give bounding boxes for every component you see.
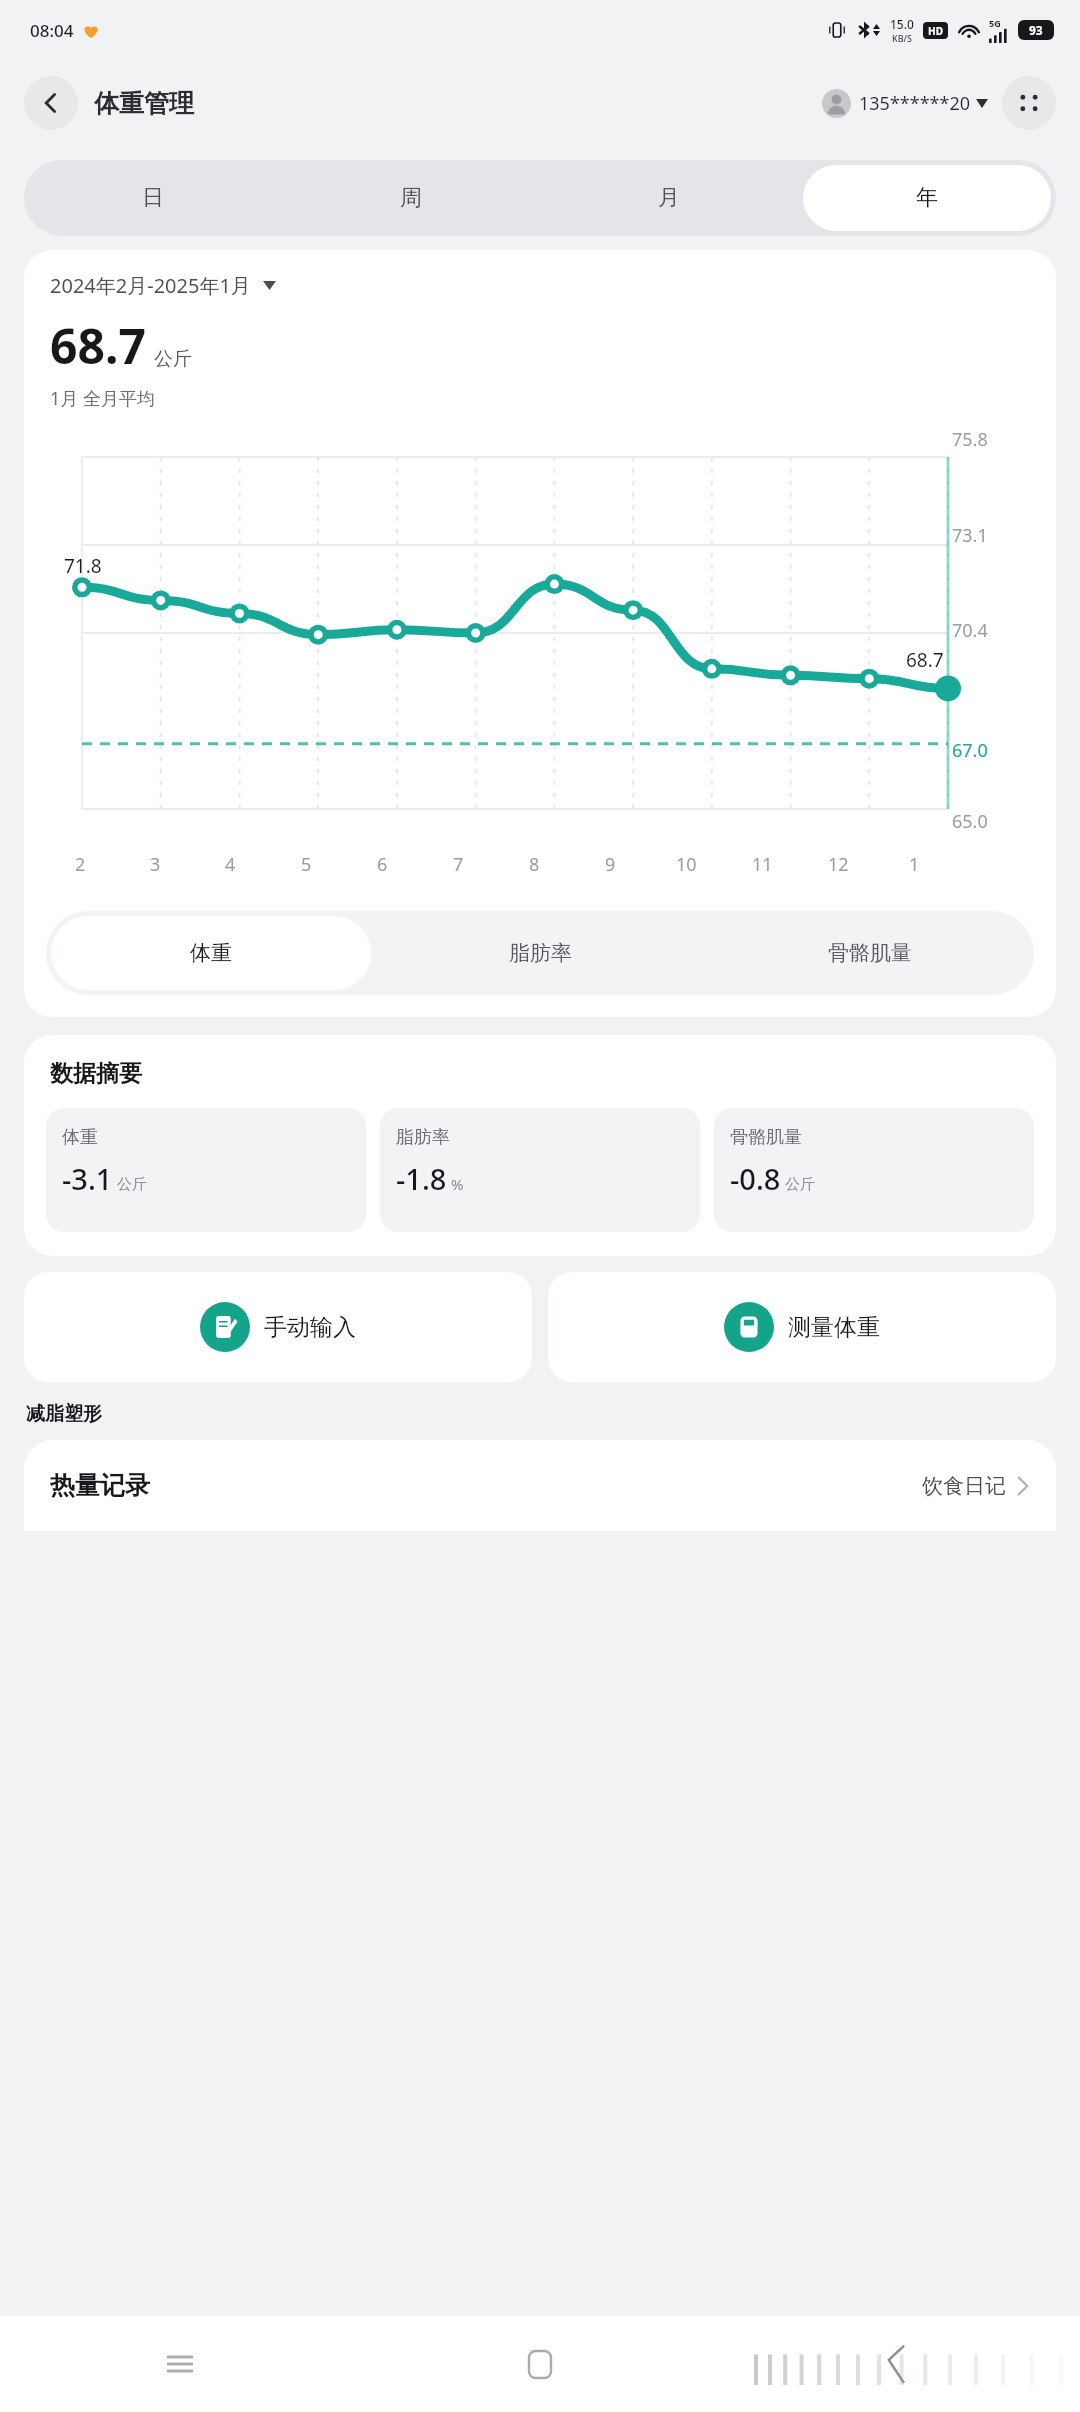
staticText: 67.0: [952, 738, 988, 763]
button[interactable]: 返回: [24, 76, 78, 130]
staticText: 骨骼肌量: [730, 1126, 802, 1149]
staticText: 93: [1029, 22, 1043, 38]
staticText: 12: [828, 852, 849, 877]
staticText: 65.0: [952, 809, 988, 834]
button[interactable]: 周: [287, 165, 535, 231]
staticText: 体重: [190, 940, 232, 966]
button[interactable]: 体重: [51, 916, 371, 990]
staticText: -3.1: [62, 1159, 113, 1198]
button[interactable]: 脂肪率: [381, 916, 700, 990]
staticText: 5G: [989, 17, 1001, 29]
staticText: 体重: [62, 1126, 98, 1149]
button[interactable]: 135******20: [820, 89, 990, 118]
staticText: 1月 全月平均: [50, 386, 155, 411]
staticText: 6: [377, 852, 388, 877]
staticText: 脂肪率: [396, 1126, 450, 1149]
staticText: 2024年2月-2025年1月: [50, 272, 251, 299]
staticText: 日: [142, 184, 164, 212]
button[interactable]: 最近任务: [0, 2316, 360, 2412]
staticText: 饮食日记: [922, 1473, 1006, 1499]
button[interactable]: 2024年2月-2025年1月: [50, 272, 276, 299]
button[interactable]: 返回: [720, 2316, 1080, 2412]
button[interactable]: 月: [545, 165, 793, 231]
staticText: 测量体重: [788, 1313, 880, 1342]
staticText: %: [451, 1174, 464, 1194]
staticText: KB/S: [892, 32, 912, 44]
staticText: 减脂塑形: [26, 1402, 102, 1426]
button[interactable]: 手动输入: [24, 1272, 532, 1382]
staticText: -0.8: [730, 1159, 781, 1198]
staticText: 08:04: [30, 19, 74, 42]
staticText: 月: [658, 184, 680, 212]
button[interactable]: 测量体重: [548, 1272, 1056, 1382]
staticText: 体重管理: [94, 88, 194, 119]
staticText: 3: [150, 852, 161, 877]
staticText: 7: [453, 852, 464, 877]
staticText: 68.7: [906, 647, 944, 673]
staticText: 公斤: [117, 1175, 147, 1194]
staticText: 公斤: [154, 347, 192, 371]
staticText: 70.4: [952, 618, 988, 643]
staticText: 数据摘要: [50, 1059, 142, 1088]
staticText: 11: [752, 852, 773, 877]
staticText: 1: [909, 852, 920, 877]
staticText: 2: [75, 852, 86, 877]
staticText: 9: [605, 852, 616, 877]
button[interactable]: 骨骼肌量: [714, 1108, 1034, 1232]
staticText: HD: [928, 24, 943, 38]
staticText: 73.1: [952, 523, 988, 548]
button[interactable]: 主页: [360, 2316, 720, 2412]
button[interactable]: 日: [29, 165, 277, 231]
staticText: 10: [676, 852, 697, 877]
staticText: 骨骼肌量: [828, 940, 912, 966]
staticText: -1.8: [396, 1159, 447, 1198]
staticText: 15.0: [890, 16, 914, 32]
staticText: 5: [301, 852, 312, 877]
staticText: 热量记录: [50, 1470, 150, 1501]
staticText: 75.8: [952, 427, 988, 452]
button[interactable]: 年: [803, 165, 1051, 231]
staticText: 脂肪率: [509, 940, 572, 966]
staticText: 手动输入: [264, 1313, 356, 1342]
staticText: 年: [916, 184, 938, 212]
staticText: 周: [400, 184, 422, 212]
staticText: 135******20: [859, 91, 970, 116]
button[interactable]: 热量记录: [24, 1440, 1056, 1531]
button[interactable]: 脂肪率: [380, 1108, 700, 1232]
staticText: 68.7: [50, 313, 146, 378]
staticText: 公斤: [785, 1175, 815, 1194]
staticText: 4: [225, 852, 236, 877]
button[interactable]: 骨骼肌量: [710, 916, 1029, 990]
staticText: 71.8: [64, 553, 102, 579]
button[interactable]: 更多: [1002, 76, 1056, 130]
button[interactable]: 体重: [46, 1108, 366, 1232]
staticText: 8: [529, 852, 540, 877]
